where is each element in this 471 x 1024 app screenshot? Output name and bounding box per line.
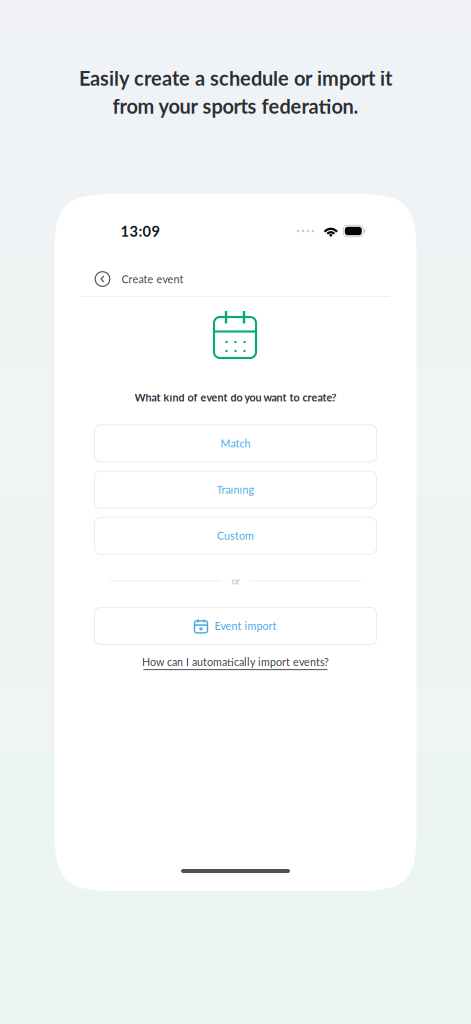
button[interactable]: Back [89, 266, 115, 292]
button[interactable]: How can I automatically import events? [142, 655, 329, 670]
staticText: Event import [214, 619, 276, 632]
staticText: from your sports federation. [112, 94, 358, 118]
staticText: Custom [217, 529, 254, 542]
staticText: 13:09 [120, 222, 160, 240]
staticText: or [231, 575, 239, 586]
button[interactable]: Event import [94, 607, 376, 644]
staticText: What kind of event do you want to create… [134, 391, 336, 404]
staticText: Training [216, 483, 254, 496]
staticText: Easily create a schedule or import it [79, 66, 392, 90]
staticText: Create event [121, 273, 183, 285]
staticText: How can I automatically import events? [142, 655, 329, 668]
button[interactable]: Training [94, 471, 376, 508]
button[interactable]: Custom [94, 517, 376, 554]
button[interactable]: Match [94, 425, 376, 462]
staticText: Match [220, 437, 250, 450]
